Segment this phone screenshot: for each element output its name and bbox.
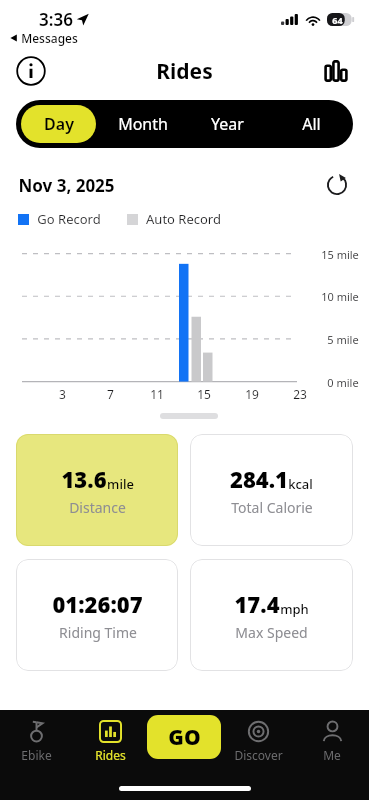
staticText: 284.1 bbox=[230, 464, 288, 494]
button[interactable]: 17.4 bbox=[190, 559, 353, 671]
button[interactable]: Day bbox=[21, 105, 96, 143]
staticText: Rides bbox=[156, 57, 213, 86]
staticText: GO bbox=[168, 723, 201, 752]
button[interactable]: 284.1 bbox=[190, 434, 353, 546]
button[interactable]: All bbox=[274, 105, 348, 143]
staticText: 13.6 bbox=[61, 464, 107, 494]
staticText: Distance bbox=[69, 498, 126, 517]
staticText: 0 mile bbox=[327, 375, 359, 390]
button[interactable]: Discover bbox=[221, 710, 295, 772]
staticText: 64 bbox=[332, 14, 343, 26]
staticText: Rides bbox=[95, 747, 126, 763]
staticText: Go Record bbox=[37, 210, 101, 228]
button[interactable]: GO bbox=[147, 715, 221, 759]
button[interactable]: 01:26:07 bbox=[16, 559, 178, 671]
staticText: Me bbox=[323, 747, 341, 763]
staticText: Year bbox=[211, 113, 244, 135]
staticText: Total Calorie bbox=[231, 498, 313, 517]
staticText: mph bbox=[280, 600, 309, 618]
staticText: Auto Record bbox=[146, 210, 221, 228]
staticText: 5 mile bbox=[327, 332, 359, 347]
staticText: kcal bbox=[288, 475, 313, 493]
staticText: 10 mile bbox=[321, 289, 359, 304]
staticText: Discover bbox=[234, 747, 283, 763]
staticText: Messages bbox=[21, 30, 78, 46]
staticText: 11 bbox=[150, 386, 164, 402]
button[interactable]: Refresh bbox=[323, 172, 351, 198]
staticText: 23 bbox=[293, 386, 307, 402]
staticText: 3 bbox=[59, 386, 66, 402]
staticText: mile bbox=[107, 475, 134, 493]
staticText: 15 mile bbox=[321, 247, 359, 262]
staticText: 3:36 bbox=[39, 8, 73, 31]
staticText: 01:26:07 bbox=[52, 589, 143, 619]
staticText: Day bbox=[44, 113, 74, 135]
button[interactable]: Year bbox=[190, 105, 264, 143]
staticText: All bbox=[302, 113, 321, 135]
staticText: 17.4 bbox=[234, 589, 280, 619]
staticText: Max Speed bbox=[235, 623, 308, 642]
button[interactable]: Month bbox=[106, 105, 180, 143]
button[interactable]: Rides bbox=[73, 710, 147, 772]
staticText: Nov 3, 2025 bbox=[18, 174, 115, 197]
button[interactable]: Information bbox=[14, 54, 48, 88]
staticText: 19 bbox=[245, 386, 259, 402]
staticText: Ebike bbox=[21, 747, 52, 763]
button[interactable]: Ebike bbox=[0, 710, 73, 772]
button[interactable]: Me bbox=[295, 710, 369, 772]
staticText: Month bbox=[118, 113, 168, 135]
button[interactable]: 13.6 bbox=[16, 434, 178, 546]
staticText: 15 bbox=[197, 386, 211, 402]
staticText: Riding Time bbox=[59, 623, 137, 642]
staticText: 7 bbox=[107, 386, 114, 402]
button[interactable]: Statistics bbox=[319, 54, 353, 88]
